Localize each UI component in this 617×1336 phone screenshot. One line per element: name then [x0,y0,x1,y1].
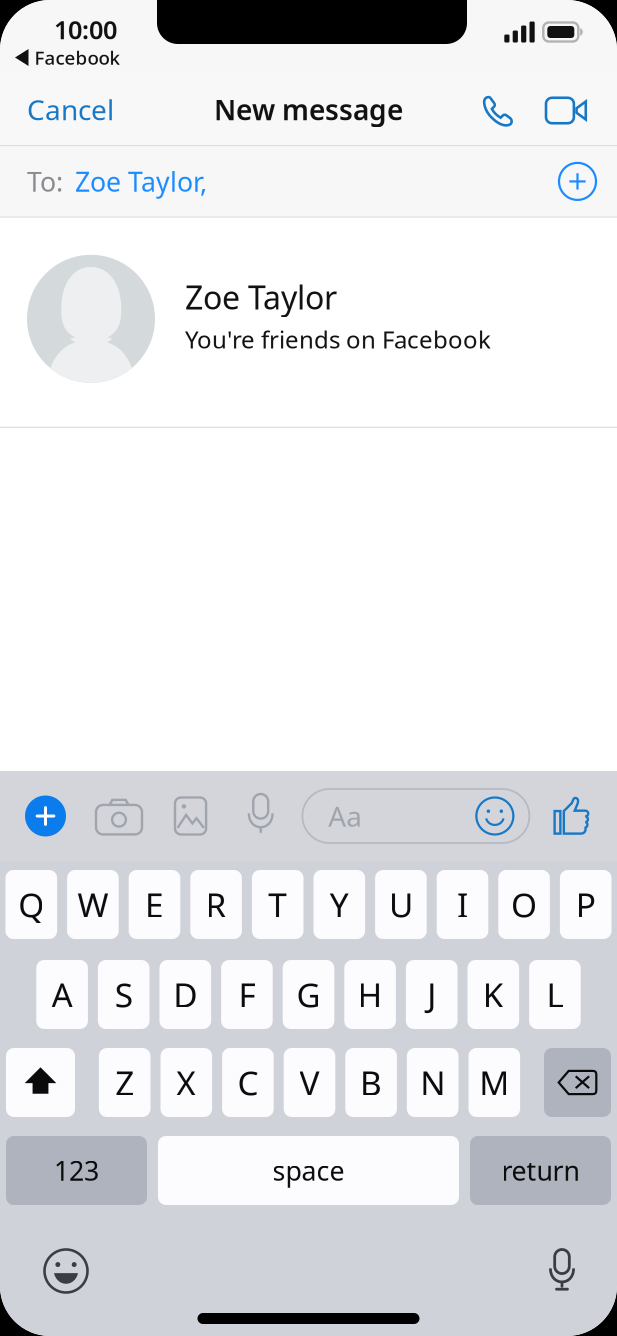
button[interactable]: M [468,1048,520,1117]
staticText: O [511,882,537,927]
staticText: H [358,972,383,1017]
staticText: You're friends on Facebook [185,323,491,355]
button[interactable]: I [437,870,488,939]
staticText: A [52,972,73,1017]
button[interactable]: Facebook [15,46,119,68]
button[interactable]: Send like [552,795,593,836]
staticText: Zoe Taylor [185,276,337,318]
staticText: B [360,1060,382,1105]
button[interactable]: 123 [6,1136,147,1205]
button[interactable]: Y [313,870,365,939]
button[interactable]: Shift [6,1048,75,1117]
button[interactable]: return [470,1136,611,1205]
button[interactable]: Audio call [480,91,517,128]
staticText: Q [18,882,44,927]
button[interactable]: S [98,960,149,1029]
button[interactable]: Video call [546,97,587,122]
staticText: D [173,972,197,1017]
button[interactable]: A [36,960,88,1029]
staticText: N [420,1060,445,1105]
staticText: M [479,1060,509,1105]
staticText: Z [115,1060,134,1105]
button[interactable]: V [284,1048,335,1117]
staticText: J [427,972,436,1017]
staticText: Zoe Taylor, [75,164,207,199]
staticText: I [457,882,468,927]
staticText: Cancel [27,91,114,128]
staticText: To: [27,164,63,199]
button[interactable]: R [190,870,242,939]
staticText: R [206,882,227,927]
staticText: 123 [54,1153,99,1188]
button[interactable]: Dictation [531,1245,593,1297]
button[interactable]: Delete [544,1048,611,1117]
button[interactable]: Voice message [247,794,274,838]
button[interactable]: F [221,960,273,1029]
button[interactable]: Q [5,870,57,939]
button[interactable]: P [560,870,611,939]
staticText: K [483,972,504,1017]
staticText: F [238,972,255,1017]
button[interactable]: K [467,960,519,1029]
staticText: T [268,882,287,927]
staticText: New message [214,91,403,128]
button[interactable]: T [252,870,303,939]
button[interactable]: space [158,1136,459,1205]
staticText: G [296,972,320,1017]
staticText: space [272,1153,344,1188]
button[interactable]: N [407,1048,458,1117]
staticText: 10:00 [54,13,117,46]
staticText: E [145,882,164,927]
button[interactable]: U [375,870,427,939]
button[interactable]: Emoji [35,1245,97,1297]
button[interactable]: Cancel [0,74,114,145]
button[interactable]: O [498,870,550,939]
staticText: P [576,882,596,927]
button[interactable]: D [159,960,211,1029]
button[interactable]: More [25,795,66,836]
staticText: S [115,972,133,1017]
staticText: L [546,972,563,1017]
button[interactable]: Photos [175,797,206,834]
button[interactable]: Z [99,1048,150,1117]
staticText: W [77,882,108,927]
button[interactable]: C [222,1048,274,1117]
staticText: V [299,1060,319,1105]
staticText: C [237,1060,258,1105]
button[interactable]: J [406,960,457,1029]
button[interactable]: E [129,870,180,939]
staticText: return [501,1153,579,1188]
button[interactable]: W [67,870,119,939]
staticText: Facebook [34,45,119,70]
button[interactable]: Zoe Taylor [0,218,617,427]
staticText: Y [330,882,349,927]
button[interactable]: B [345,1048,397,1117]
staticText: U [389,882,413,927]
staticText: X [176,1060,196,1105]
button[interactable]: H [344,960,396,1029]
staticText: Aa [328,797,362,835]
button[interactable]: Aa [302,789,529,843]
button[interactable]: G [283,960,334,1029]
button[interactable]: Camera [96,798,142,834]
button[interactable]: Add recipient [559,163,596,200]
button[interactable]: X [160,1048,212,1117]
button[interactable]: L [529,960,581,1029]
